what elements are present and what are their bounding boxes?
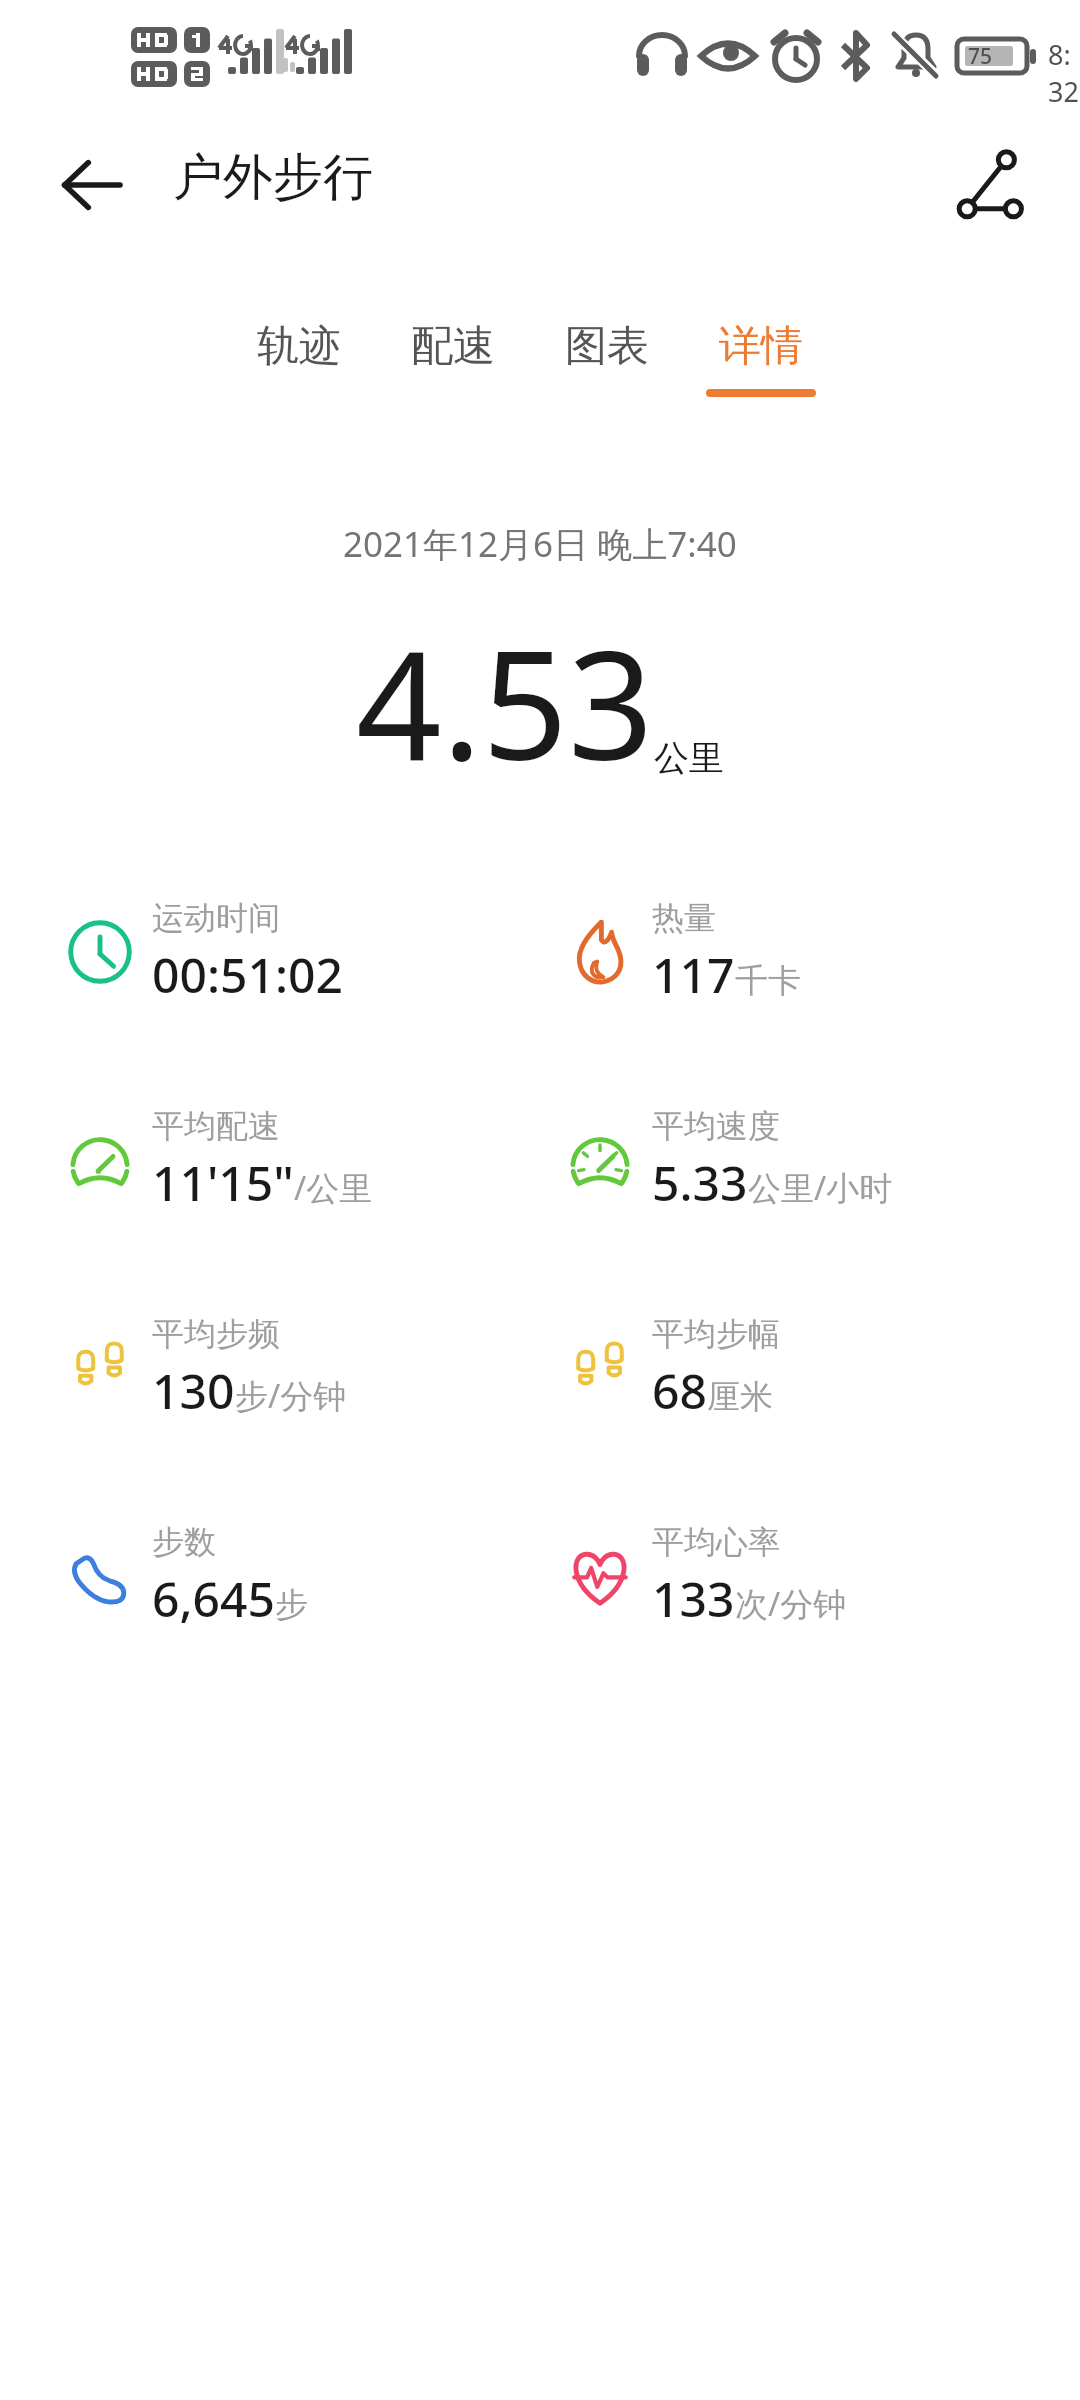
staticText: 配速	[411, 320, 495, 373]
button[interactable]: 步数	[66, 1472, 540, 1680]
button[interactable]: 配速	[392, 320, 514, 397]
staticText: 平均步频	[152, 1314, 280, 1354]
staticText: 6,645	[152, 1566, 275, 1631]
staticText: 11'15"	[152, 1150, 294, 1215]
button[interactable]: 运动时间	[66, 848, 540, 1056]
button[interactable]: 平均步频	[66, 1264, 540, 1472]
staticText: 厘米	[707, 1376, 773, 1418]
staticText: 步/分钟	[235, 1373, 347, 1418]
button[interactable]: 图表	[546, 320, 668, 397]
staticText: 平均心率	[652, 1522, 780, 1562]
staticText: 详情	[719, 320, 803, 373]
staticText: 步数	[152, 1522, 216, 1562]
staticText: 5.33	[652, 1150, 748, 1215]
button[interactable]: 平均步幅	[566, 1264, 1080, 1472]
staticText: 平均速度	[652, 1106, 780, 1146]
staticText: 平均配速	[152, 1106, 280, 1146]
staticText: 图表	[565, 320, 649, 373]
button[interactable]: 平均配速	[66, 1056, 540, 1264]
staticText: 公里/小时	[748, 1165, 893, 1210]
staticText: 68	[652, 1358, 707, 1423]
staticText: 4.53	[356, 600, 654, 804]
staticText: 步	[275, 1584, 308, 1626]
staticText: 运动时间	[152, 898, 280, 938]
staticText: 8:32	[1048, 36, 1080, 110]
staticText: 133	[652, 1566, 735, 1631]
staticText: 千卡	[735, 960, 801, 1002]
staticText: 公里	[654, 736, 724, 780]
staticText: 轨迹	[257, 320, 341, 373]
button[interactable]: 平均心率	[566, 1472, 1080, 1680]
staticText: /公里	[294, 1165, 373, 1210]
button[interactable]: Back	[58, 152, 124, 218]
staticText: 户外步行	[173, 146, 373, 209]
button[interactable]: 详情	[700, 320, 822, 397]
staticText: 平均步幅	[652, 1314, 780, 1354]
button[interactable]: 热量	[566, 848, 1080, 1056]
staticText: 75	[968, 42, 993, 71]
button[interactable]: 平均速度	[566, 1056, 1080, 1264]
button[interactable]: 轨迹	[238, 320, 360, 397]
staticText: 00:51:02	[152, 942, 343, 1007]
staticText: 130	[152, 1358, 235, 1423]
staticText: 117	[652, 942, 735, 1007]
staticText: 2021年12月6日 晚上7:40	[343, 520, 737, 568]
button[interactable]: Share	[956, 150, 1026, 220]
staticText: 次/分钟	[735, 1581, 847, 1626]
staticText: 热量	[652, 898, 716, 938]
